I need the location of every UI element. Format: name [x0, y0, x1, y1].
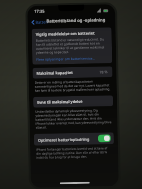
- button[interactable]: Flere oplysninger om batteriservice…: [36, 55, 95, 62]
- staticText: Batteri: [35, 19, 48, 25]
- staticText: Optimeret batteriopladning: [38, 136, 98, 143]
- button[interactable]: Optimeret batteriopladning: [34, 132, 114, 146]
- button[interactable]: Batteri: [27, 18, 52, 26]
- staticText: Evne til maksimal ydelse: [37, 99, 83, 105]
- staticText: iPhone forlænger batteriets levetid ved …: [36, 146, 112, 160]
- staticText: Understøtter dynamisk ydeevnestyring. Dg…: [35, 108, 112, 130]
- button[interactable]: Vigtig meddelelse om batteriet: [32, 27, 112, 65]
- staticText: Batteriets tilstand er væsentligt reduce…: [36, 37, 108, 55]
- button[interactable]: Evne til maksimal ydelse: [33, 95, 113, 108]
- staticText: 17:35: [34, 9, 45, 14]
- button[interactable]: Optimeret batteriopladning til: [98, 134, 111, 142]
- staticText: Vigtig meddelelse om batteriet: [36, 30, 95, 37]
- staticText: Batteritilstand og -opladning: [46, 17, 105, 24]
- staticText: Maksimal kapacitet: [36, 69, 100, 76]
- staticText: Dette er en måling af batterikapaciteten…: [35, 79, 111, 93]
- staticText: 78 %: [99, 69, 108, 74]
- button[interactable]: Maksimal kapacitet: [32, 66, 113, 79]
